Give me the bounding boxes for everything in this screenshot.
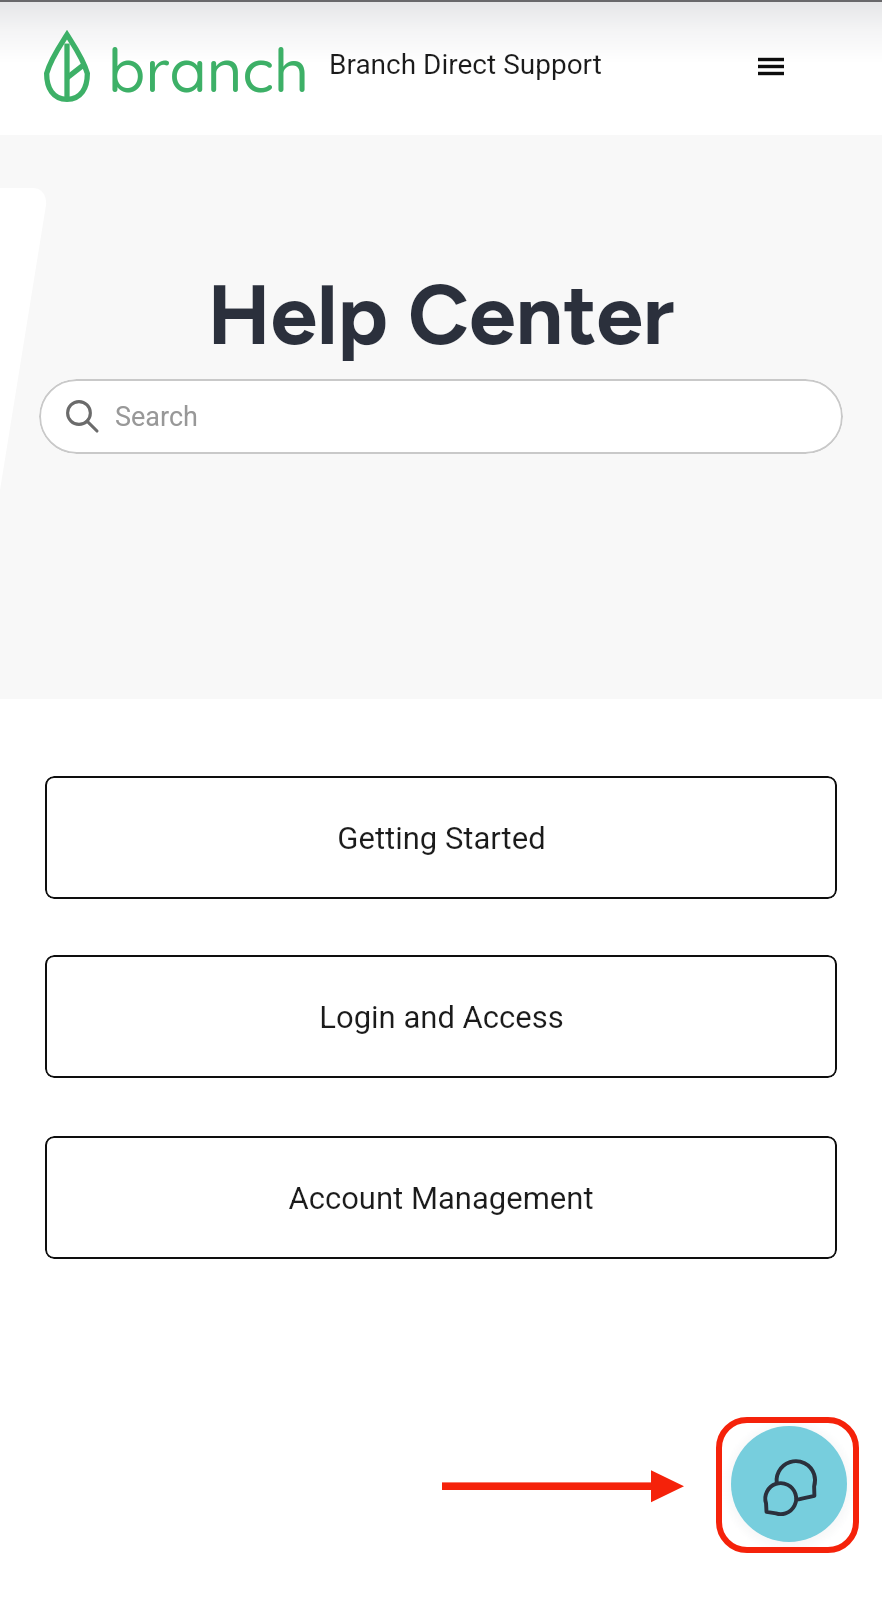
staticText: Search	[115, 401, 198, 433]
button[interactable]: Search	[39, 379, 843, 454]
staticText: Help Center	[0, 264, 882, 365]
button[interactable]: Open menu	[743, 42, 799, 90]
staticText: Branch Direct Support	[329, 48, 602, 81]
button[interactable]: Login and Access	[45, 955, 837, 1078]
button[interactable]: Account Management	[45, 1136, 837, 1259]
button[interactable]: Getting Started	[45, 776, 837, 899]
staticText: Login and Access	[319, 999, 564, 1035]
other: Branch logo	[44, 32, 90, 102]
staticText: Getting Started	[337, 820, 546, 856]
button[interactable]: Chat with support	[731, 1426, 847, 1542]
staticText: branch	[108, 31, 309, 107]
staticText: Account Management	[288, 1180, 594, 1216]
